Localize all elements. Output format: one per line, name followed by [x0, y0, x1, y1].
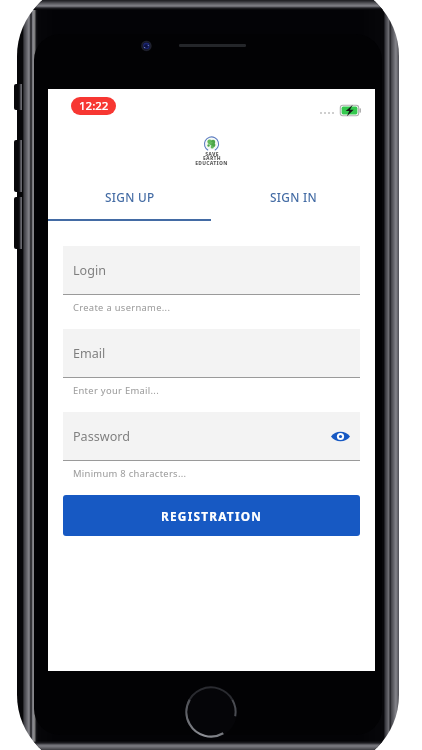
staticText: Create a username...	[73, 301, 171, 314]
staticText: EDUCATION	[195, 160, 228, 167]
staticText: SIGN IN	[270, 189, 317, 205]
button[interactable]: Side button	[14, 84, 22, 110]
staticText: Password	[73, 428, 130, 445]
staticText: Minimum 8 characters...	[73, 467, 187, 480]
button[interactable]: SIGN UP	[48, 180, 211, 221]
staticText: Enter your Email...	[73, 384, 159, 397]
staticText: REGISTRATION	[161, 508, 263, 524]
button[interactable]: SIGN IN	[211, 180, 375, 221]
staticText: SAVE	[205, 151, 219, 158]
staticText: Email	[73, 345, 106, 362]
button[interactable]: Side button	[14, 197, 22, 249]
button[interactable]: Email	[63, 329, 360, 377]
button[interactable]: Home	[183, 684, 239, 740]
staticText: Login	[73, 262, 106, 279]
button[interactable]: Side button	[14, 140, 22, 192]
button[interactable]: REGISTRATION	[63, 495, 360, 536]
button[interactable]: Show password	[331, 430, 350, 443]
staticText: 12:22	[79, 98, 109, 114]
button[interactable]: Password	[63, 412, 360, 460]
staticText: SIGN UP	[105, 189, 155, 205]
staticText: EARTH	[203, 155, 221, 162]
button[interactable]: Login	[63, 246, 360, 294]
